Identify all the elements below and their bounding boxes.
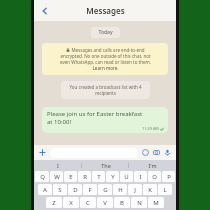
button[interactable]: O xyxy=(148,171,161,182)
staticText: even WhatsApp, can read or listen to the… xyxy=(60,59,151,65)
button[interactable]: L xyxy=(158,184,172,195)
button[interactable]: K xyxy=(143,184,157,195)
button[interactable]: Learn more. xyxy=(92,65,119,71)
button[interactable]: Back xyxy=(36,2,54,20)
button[interactable]: U xyxy=(120,171,133,182)
staticText: at 10:00! xyxy=(47,118,72,126)
staticText: X xyxy=(69,199,73,207)
staticText: L xyxy=(163,186,167,194)
button[interactable]: R xyxy=(78,171,91,182)
staticText: R xyxy=(83,173,87,181)
button[interactable]: V xyxy=(97,197,113,208)
staticText: M xyxy=(153,199,159,207)
staticText: Y xyxy=(111,173,115,181)
button[interactable]: D xyxy=(68,184,82,195)
staticText: I xyxy=(139,173,142,181)
button[interactable]: G xyxy=(98,184,112,195)
staticText: Messages xyxy=(86,5,125,16)
button[interactable]: Y xyxy=(106,171,119,182)
staticText: B xyxy=(120,199,124,207)
staticText: V xyxy=(103,199,107,207)
button[interactable]: N xyxy=(131,197,147,208)
staticText: E xyxy=(69,173,73,181)
staticText: D xyxy=(73,186,78,194)
button[interactable]: T xyxy=(92,171,105,182)
button[interactable]: The xyxy=(82,160,129,171)
staticText: The xyxy=(101,162,111,169)
staticText: U xyxy=(124,173,129,181)
staticText: J xyxy=(134,186,136,194)
staticText: O xyxy=(152,173,157,181)
button[interactable]: B xyxy=(114,197,130,208)
button[interactable]: Please join us for Easter breakfast xyxy=(42,107,168,133)
button[interactable]: I xyxy=(134,171,147,182)
staticText: G xyxy=(103,186,108,194)
staticText: Q xyxy=(40,173,45,181)
button[interactable]: Q xyxy=(35,171,49,182)
staticText: You created a broadcast list with 4 xyxy=(69,84,142,90)
button[interactable]: Voice message xyxy=(162,147,173,158)
button[interactable]: I xyxy=(34,160,82,171)
staticText: S xyxy=(58,186,62,194)
staticText: Today xyxy=(98,29,113,36)
button[interactable]: M xyxy=(148,197,164,208)
staticText: I xyxy=(57,162,59,169)
button[interactable]: Camera xyxy=(151,147,162,158)
staticText: K xyxy=(148,186,152,194)
staticText: 11:29 AM xyxy=(142,126,159,131)
staticText: Messages and calls are end-to-end xyxy=(71,47,145,53)
staticText: P xyxy=(167,173,171,181)
staticText: C xyxy=(86,199,90,207)
button[interactable]: E xyxy=(64,171,77,182)
button[interactable]: W xyxy=(50,171,63,182)
staticText: H xyxy=(118,186,123,194)
button[interactable]: A xyxy=(38,184,52,195)
staticText: Learn more. xyxy=(92,65,119,71)
staticText: A xyxy=(43,186,47,194)
staticText: recipients xyxy=(95,90,116,96)
button[interactable]: Z xyxy=(46,197,62,208)
staticText: F xyxy=(88,186,92,194)
button[interactable]: P xyxy=(162,171,175,182)
button[interactable]: S xyxy=(53,184,67,195)
button[interactable]: Sticker xyxy=(140,147,151,158)
staticText: Z xyxy=(52,199,56,207)
staticText: encrypted. No one outside of this chat, … xyxy=(60,53,151,59)
button[interactable]: F xyxy=(83,184,97,195)
button[interactable]: X xyxy=(63,197,79,208)
staticText: W xyxy=(54,173,60,181)
staticText: I'm xyxy=(148,162,157,169)
button[interactable]: H xyxy=(113,184,127,195)
staticText: Please join us for Easter breakfast xyxy=(47,110,143,118)
button[interactable]: J xyxy=(128,184,142,195)
button[interactable]: Attach xyxy=(37,147,48,158)
staticText: N xyxy=(137,199,142,207)
staticText: T xyxy=(97,173,101,181)
button[interactable]: I'm xyxy=(129,160,176,171)
button[interactable]: C xyxy=(80,197,96,208)
